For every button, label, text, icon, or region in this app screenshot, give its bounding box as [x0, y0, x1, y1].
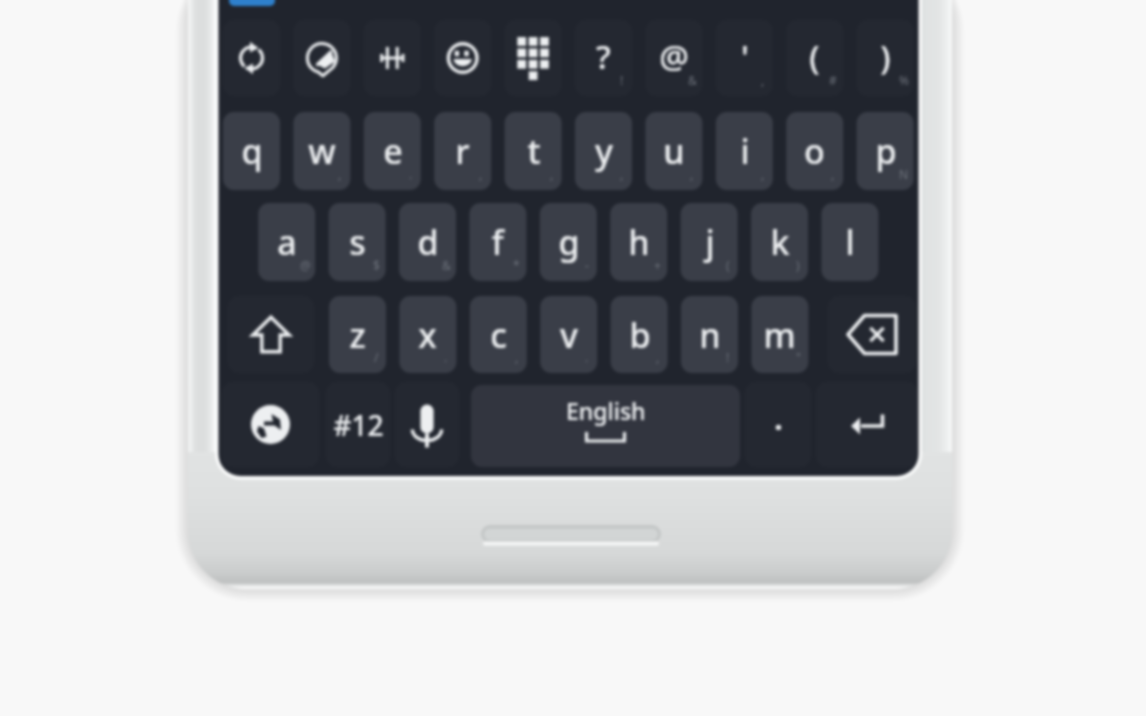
staticText: + — [654, 257, 661, 273]
staticText: ? — [596, 34, 611, 79]
staticText: #12 — [333, 406, 384, 444]
staticText: d — [417, 219, 439, 265]
button[interactable]: q — [223, 112, 280, 190]
button[interactable]: g — [540, 203, 597, 281]
button[interactable]: c — [470, 296, 527, 373]
button[interactable]: u — [645, 112, 702, 190]
staticText: g — [558, 219, 580, 265]
staticText: j — [705, 219, 715, 265]
staticText: y — [595, 128, 613, 174]
button[interactable]: l — [821, 203, 878, 281]
button[interactable]: h — [610, 203, 667, 281]
staticText: $ — [373, 257, 380, 273]
button[interactable]: Backspace — [828, 296, 916, 373]
staticText: / — [374, 349, 379, 365]
staticText: w — [308, 128, 336, 174]
staticText: ! — [620, 72, 624, 88]
staticText: . — [774, 398, 783, 439]
button[interactable]: k — [751, 203, 808, 281]
button[interactable]: p — [857, 112, 914, 190]
staticText: , — [761, 72, 765, 88]
staticText: k — [770, 219, 790, 265]
staticText: & — [688, 72, 697, 88]
staticText: e — [383, 128, 403, 174]
button[interactable]: v — [540, 296, 597, 373]
staticText: p — [875, 128, 897, 174]
staticText: r — [455, 128, 470, 174]
staticText: q — [241, 128, 263, 174]
staticText: b — [629, 312, 651, 358]
button[interactable]: Voice input — [395, 382, 459, 467]
button[interactable]: z — [329, 296, 386, 373]
button[interactable]: . — [745, 382, 811, 467]
staticText: * — [513, 257, 520, 273]
button[interactable]: s — [329, 203, 386, 281]
staticText: English — [566, 395, 646, 426]
button[interactable]: Emoji — [434, 20, 491, 96]
button[interactable]: b — [611, 296, 668, 373]
button[interactable]: d — [399, 203, 456, 281]
button[interactable]: ? — [575, 20, 632, 96]
button[interactable]: Number pad — [505, 20, 562, 96]
button[interactable]: ) — [857, 20, 914, 96]
staticText: t — [527, 128, 541, 174]
button[interactable]: Stickers — [293, 20, 350, 96]
button[interactable]: m — [751, 296, 808, 373]
staticText: z — [349, 312, 366, 358]
staticText: ( — [809, 34, 820, 79]
button[interactable]: r — [434, 112, 491, 190]
staticText: ( — [726, 257, 730, 273]
staticText: h — [628, 219, 650, 265]
staticText: f — [491, 219, 504, 265]
button[interactable]: o — [786, 112, 843, 190]
staticText: n — [699, 312, 721, 358]
button[interactable]: a — [258, 203, 315, 281]
staticText: ! — [726, 349, 730, 365]
button[interactable]: w — [293, 112, 350, 190]
button[interactable]: ' — [716, 20, 773, 96]
button[interactable]: f — [469, 203, 526, 281]
staticText: x — [418, 312, 437, 358]
staticText: @ — [659, 34, 689, 79]
staticText: # — [829, 72, 837, 88]
button[interactable]: Undo — [223, 20, 280, 96]
staticText: @ — [300, 257, 311, 273]
staticText: ) — [796, 257, 800, 273]
staticText: & — [442, 257, 451, 273]
button[interactable]: n — [681, 296, 738, 373]
button[interactable]: #12 — [326, 382, 390, 467]
staticText: ) — [880, 34, 891, 79]
button[interactable]: Space, English — [471, 385, 740, 467]
button[interactable]: Change keyboard language — [222, 382, 319, 467]
button[interactable]: e — [364, 112, 421, 190]
button[interactable]: i — [716, 112, 773, 190]
button[interactable]: Move cursor — [364, 20, 421, 96]
button[interactable]: Shift — [228, 296, 314, 373]
staticText: c — [490, 312, 507, 358]
staticText: i — [740, 128, 750, 174]
button[interactable]: Enter — [816, 382, 918, 467]
button[interactable]: j — [681, 203, 738, 281]
button[interactable]: y — [575, 112, 632, 190]
button[interactable]: @ — [645, 20, 702, 96]
staticText: a — [277, 219, 297, 265]
button[interactable]: t — [505, 112, 562, 190]
staticText: m — [763, 312, 796, 358]
button[interactable]: x — [399, 296, 456, 373]
staticText: l — [845, 219, 855, 265]
staticText: s — [349, 219, 366, 265]
staticText: v — [560, 312, 578, 358]
button[interactable]: ( — [786, 20, 843, 96]
staticText: ' — [741, 34, 749, 79]
staticText: u — [663, 128, 685, 174]
